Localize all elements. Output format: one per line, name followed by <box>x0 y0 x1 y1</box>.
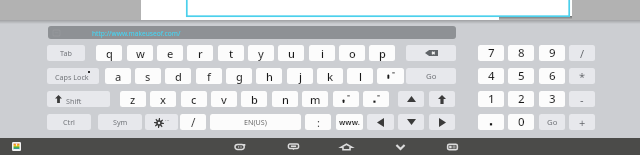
button[interactable]: j <box>287 68 313 84</box>
button[interactable]: 3 <box>539 91 565 107</box>
staticText: EN(US) <box>244 117 267 127</box>
button[interactable]: u <box>278 45 304 61</box>
button[interactable]: 9 <box>539 45 565 61</box>
button[interactable]: Go <box>406 68 456 84</box>
staticText: p <box>379 46 386 61</box>
button[interactable]: t <box>218 45 244 61</box>
button[interactable]: m <box>302 91 328 107</box>
button[interactable]: 5 <box>508 68 534 84</box>
staticText: Sym <box>113 117 128 127</box>
button[interactable]: / <box>180 114 206 130</box>
button[interactable]: Shift <box>47 91 110 107</box>
button[interactable]: / <box>569 45 595 61</box>
button[interactable]: q <box>96 45 122 61</box>
other: Shift <box>438 95 446 104</box>
staticText: a <box>115 69 122 84</box>
button[interactable]: Sym <box>98 114 142 130</box>
button[interactable]: Ctrl <box>47 114 91 130</box>
button[interactable]: Cursor up <box>398 91 424 107</box>
button[interactable]: : <box>305 114 331 130</box>
button[interactable]: Hide keyboard <box>391 140 409 153</box>
button[interactable]: n <box>272 91 298 107</box>
button[interactable]: o <box>339 45 365 61</box>
staticText: z <box>130 92 136 107</box>
staticText: r <box>198 46 203 61</box>
button[interactable]: r <box>187 45 213 61</box>
button[interactable]: y <box>248 45 274 61</box>
staticText: / <box>580 46 585 61</box>
button[interactable] <box>377 68 404 84</box>
button[interactable]: f <box>196 68 222 84</box>
staticText: + <box>579 115 586 130</box>
button[interactable]: * <box>569 68 595 84</box>
button[interactable]: x <box>150 91 176 107</box>
other: Input settings <box>154 118 164 128</box>
button[interactable]: 8 <box>508 45 534 61</box>
button[interactable]: e <box>157 45 183 61</box>
button[interactable]: Backspace <box>406 45 456 61</box>
button[interactable]: 7 <box>478 45 504 61</box>
staticText: y <box>258 46 264 61</box>
button[interactable]: Go <box>539 114 565 130</box>
button[interactable] <box>333 91 359 107</box>
button[interactable]: http://www.makeuseof.com/ <box>48 26 456 39</box>
staticText: q <box>106 46 113 61</box>
button[interactable]: a <box>105 68 131 84</box>
button[interactable] <box>478 114 504 130</box>
button[interactable]: b <box>241 91 267 107</box>
button[interactable]: 1 <box>478 91 504 107</box>
staticText: Go <box>547 117 558 128</box>
staticText: u <box>288 46 295 61</box>
button[interactable]: EN(US) <box>210 114 301 130</box>
staticText: 1 <box>488 91 495 107</box>
button[interactable]: w <box>127 45 153 61</box>
button[interactable]: Recent apps <box>443 140 461 153</box>
staticText: g <box>236 69 243 84</box>
button[interactable]: Gallery <box>12 142 21 151</box>
button[interactable]: 0 <box>508 114 534 130</box>
button[interactable]: k <box>317 68 343 84</box>
button[interactable]: + <box>569 114 595 130</box>
staticText: 7 <box>488 45 495 61</box>
staticText: s <box>145 69 151 84</box>
button[interactable]: - <box>569 91 595 107</box>
button[interactable]: l <box>347 68 373 84</box>
button[interactable]: h <box>256 68 282 84</box>
staticText: 0 <box>518 114 525 130</box>
button[interactable]: Cursor left <box>367 114 394 130</box>
staticText: k <box>327 69 334 84</box>
button[interactable]: s <box>135 68 161 84</box>
staticText: 2 <box>518 91 525 107</box>
button[interactable]: z <box>120 91 146 107</box>
button[interactable]: p <box>369 45 395 61</box>
button[interactable]: 2 <box>508 91 534 107</box>
other: Cursor up <box>407 96 416 102</box>
button[interactable]: Shift <box>429 91 455 107</box>
staticText: 4 <box>488 68 495 84</box>
staticText: f <box>207 69 211 84</box>
staticText: n <box>282 92 289 107</box>
button[interactable]: Caps Lock <box>47 68 99 84</box>
other: Cursor right <box>439 118 446 127</box>
staticText: l <box>359 69 362 84</box>
button[interactable]: v <box>211 91 237 107</box>
other: Cursor down <box>407 119 416 125</box>
button[interactable]: d <box>165 68 191 84</box>
button[interactable]: 6 <box>539 68 565 84</box>
button[interactable]: Home <box>337 140 355 153</box>
button[interactable]: 4 <box>478 68 504 84</box>
button[interactable]: Back <box>231 140 249 153</box>
button[interactable]: Screenshot <box>284 140 302 153</box>
button[interactable]: www. <box>336 114 363 130</box>
button[interactable]: Cursor down <box>398 114 424 130</box>
button[interactable]: g <box>226 68 252 84</box>
button[interactable] <box>363 91 389 107</box>
button[interactable]: i <box>309 45 335 61</box>
button[interactable]: Tab <box>47 45 85 61</box>
staticText: j <box>299 69 302 84</box>
button[interactable]: Input settings <box>145 114 178 130</box>
button[interactable]: c <box>181 91 207 107</box>
staticText: * <box>579 69 586 84</box>
staticText: 8 <box>518 45 525 61</box>
button[interactable]: Cursor right <box>429 114 455 130</box>
